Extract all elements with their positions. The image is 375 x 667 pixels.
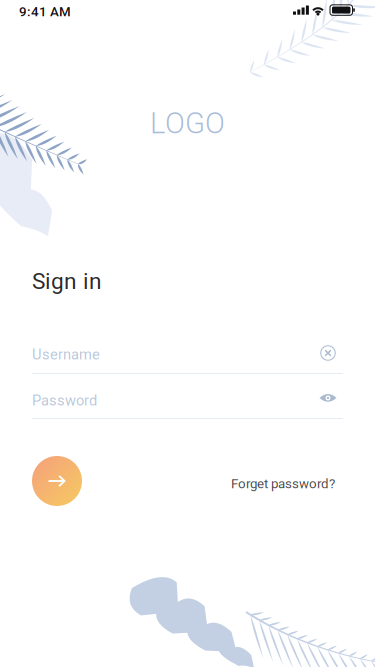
button[interactable]: Forget password?	[231, 476, 335, 492]
button[interactable]: Sign in	[32, 456, 82, 506]
button[interactable]: Show password	[313, 383, 343, 413]
button[interactable]: Clear username	[313, 338, 343, 368]
staticText: LOGO	[150, 106, 225, 140]
staticText: Forget password?	[231, 476, 335, 492]
staticText: Username	[32, 346, 100, 363]
staticText: 9:41 AM	[19, 4, 71, 20]
staticText: Sign in	[32, 268, 102, 295]
staticText: Password	[32, 392, 97, 409]
